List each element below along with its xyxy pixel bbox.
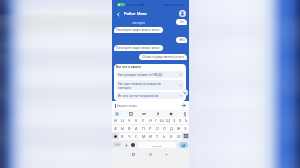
- button[interactable]: Clipboard: [128, 111, 133, 116]
- staticText: Ю: [177, 134, 181, 139]
- staticText: Я: [121, 134, 124, 139]
- staticText: Введите запрос: [117, 104, 181, 108]
- button[interactable]: Back: [115, 11, 121, 17]
- button[interactable]: Profile: [179, 10, 186, 17]
- staticText: ?123: [115, 143, 120, 146]
- staticText: Ф: [114, 126, 118, 131]
- button[interactable]: Х: [177, 117, 183, 124]
- staticText: С: [135, 134, 138, 139]
- staticText: Общие государственные услуги: [142, 55, 184, 59]
- button[interactable]: Р: [147, 125, 154, 132]
- staticText: Ч: [128, 134, 131, 139]
- button[interactable]: Ч: [126, 133, 133, 140]
- button[interactable]: Backspace: [182, 133, 189, 139]
- button[interactable]: Voice input: [182, 111, 187, 116]
- button[interactable]: Попробуйте задать вопрос иначе: [114, 27, 163, 33]
- button[interactable]: ЖКХ: [176, 37, 187, 43]
- staticText: Н: [149, 118, 152, 123]
- staticText: Щ: [166, 118, 170, 123]
- button[interactable]: Keyboard: [114, 111, 119, 116]
- staticText: Ж: [177, 126, 181, 131]
- button[interactable]: Scroll to bottom: [181, 89, 188, 96]
- staticText: Как сдать экзамен на вождение повторно: [118, 82, 179, 89]
- button[interactable]: Ф: [112, 125, 119, 132]
- button[interactable]: Settings: [131, 143, 135, 147]
- button[interactable]: Ш: [159, 117, 165, 124]
- button[interactable]: Enter: [179, 142, 188, 148]
- button[interactable]: Ы: [119, 125, 126, 132]
- staticText: Ш: [160, 118, 164, 123]
- button[interactable]: Он: [176, 19, 187, 25]
- button[interactable]: А: [133, 125, 140, 132]
- staticText: Т: [156, 134, 159, 139]
- button[interactable]: Б: [168, 133, 175, 140]
- staticText: З: [173, 118, 176, 123]
- button[interactable]: Попробуйте задать вопрос иначе: [114, 45, 163, 51]
- button[interactable]: GIF: [141, 111, 146, 116]
- staticText: Х: [179, 118, 182, 123]
- button[interactable]: Е: [140, 117, 147, 124]
- button[interactable]: Stickers: [168, 111, 173, 116]
- staticText: И: [149, 134, 152, 139]
- button[interactable]: Й: [112, 117, 119, 124]
- staticText: Э: [184, 126, 187, 131]
- staticText: сегодня: [132, 20, 146, 25]
- button[interactable]: М: [140, 133, 147, 140]
- button[interactable]: С: [133, 133, 140, 140]
- button[interactable]: Ъ: [183, 117, 189, 124]
- staticText: Попробуйте задать вопрос иначе: [116, 46, 160, 50]
- button[interactable]: Л: [161, 125, 168, 132]
- button[interactable]: Э: [182, 125, 189, 132]
- staticText: Русский: [152, 144, 162, 147]
- button[interactable]: Из чего состоит медкомиссия: [116, 92, 184, 99]
- staticText: Попробуйте задать вопрос иначе: [116, 28, 160, 32]
- button[interactable]: Н: [147, 117, 153, 124]
- button[interactable]: Д: [168, 125, 175, 132]
- button[interactable]: Г: [153, 117, 159, 124]
- staticText: Р: [149, 126, 152, 131]
- button[interactable]: И: [147, 133, 154, 140]
- staticText: Из чего состоит медкомиссия: [118, 94, 179, 98]
- button[interactable]: О: [154, 125, 161, 132]
- button[interactable]: Ц: [119, 117, 126, 124]
- staticText: Вот что я нашёл: [116, 65, 141, 69]
- button[interactable]: Общие государственные услуги: [139, 54, 187, 60]
- button[interactable]: Recents: [131, 152, 136, 157]
- staticText: ЖКХ: [179, 38, 185, 42]
- button[interactable]: Щ: [165, 117, 171, 124]
- staticText: М: [142, 134, 146, 139]
- button[interactable]: Ю: [175, 133, 182, 140]
- button[interactable]: Я: [119, 133, 126, 140]
- button[interactable]: Как сдать экзамен на вождение повторно: [116, 80, 184, 90]
- staticText: Робот Макс: [124, 11, 148, 16]
- button[interactable]: К: [133, 117, 140, 124]
- button[interactable]: Emoji: [124, 143, 128, 147]
- staticText: Е: [142, 118, 145, 123]
- staticText: Ц: [121, 118, 124, 123]
- button[interactable]: Shift: [112, 133, 119, 139]
- staticText: П: [142, 126, 145, 131]
- staticText: Как проходит экзамен от ГИБДД: [118, 73, 179, 77]
- button[interactable]: Ь: [161, 133, 168, 140]
- button[interactable]: З: [171, 117, 177, 124]
- staticText: Ъ: [185, 118, 188, 123]
- staticText: Ы: [121, 126, 125, 131]
- button[interactable]: Send: [181, 103, 186, 108]
- button[interactable]: Settings: [155, 111, 160, 116]
- button[interactable]: В: [126, 125, 133, 132]
- button[interactable]: Как проходит экзамен от ГИБДД: [116, 71, 184, 78]
- button[interactable]: Back: [164, 152, 169, 157]
- staticText: Ь: [163, 134, 166, 139]
- button[interactable]: Т: [154, 133, 161, 140]
- staticText: В: [128, 126, 131, 131]
- staticText: Он: [180, 20, 184, 24]
- staticText: Б: [170, 134, 173, 139]
- button[interactable]: Ж: [175, 125, 182, 132]
- button[interactable]: П: [140, 125, 147, 132]
- staticText: Й: [114, 118, 117, 123]
- button[interactable]: Русский: [138, 142, 176, 148]
- button[interactable]: Home: [148, 152, 153, 157]
- staticText: А: [135, 126, 138, 131]
- button[interactable]: У: [126, 117, 133, 124]
- button[interactable]: ?123: [113, 142, 121, 147]
